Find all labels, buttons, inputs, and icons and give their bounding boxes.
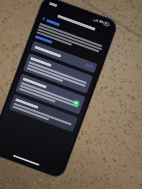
button[interactable] bbox=[9, 94, 78, 132]
other: Back bbox=[41, 16, 46, 21]
button[interactable]: Back bbox=[41, 15, 107, 44]
other: Enabled bbox=[70, 98, 82, 109]
button[interactable] bbox=[23, 53, 93, 94]
button[interactable] bbox=[30, 41, 98, 73]
button[interactable] bbox=[35, 35, 100, 61]
button[interactable] bbox=[15, 73, 86, 115]
